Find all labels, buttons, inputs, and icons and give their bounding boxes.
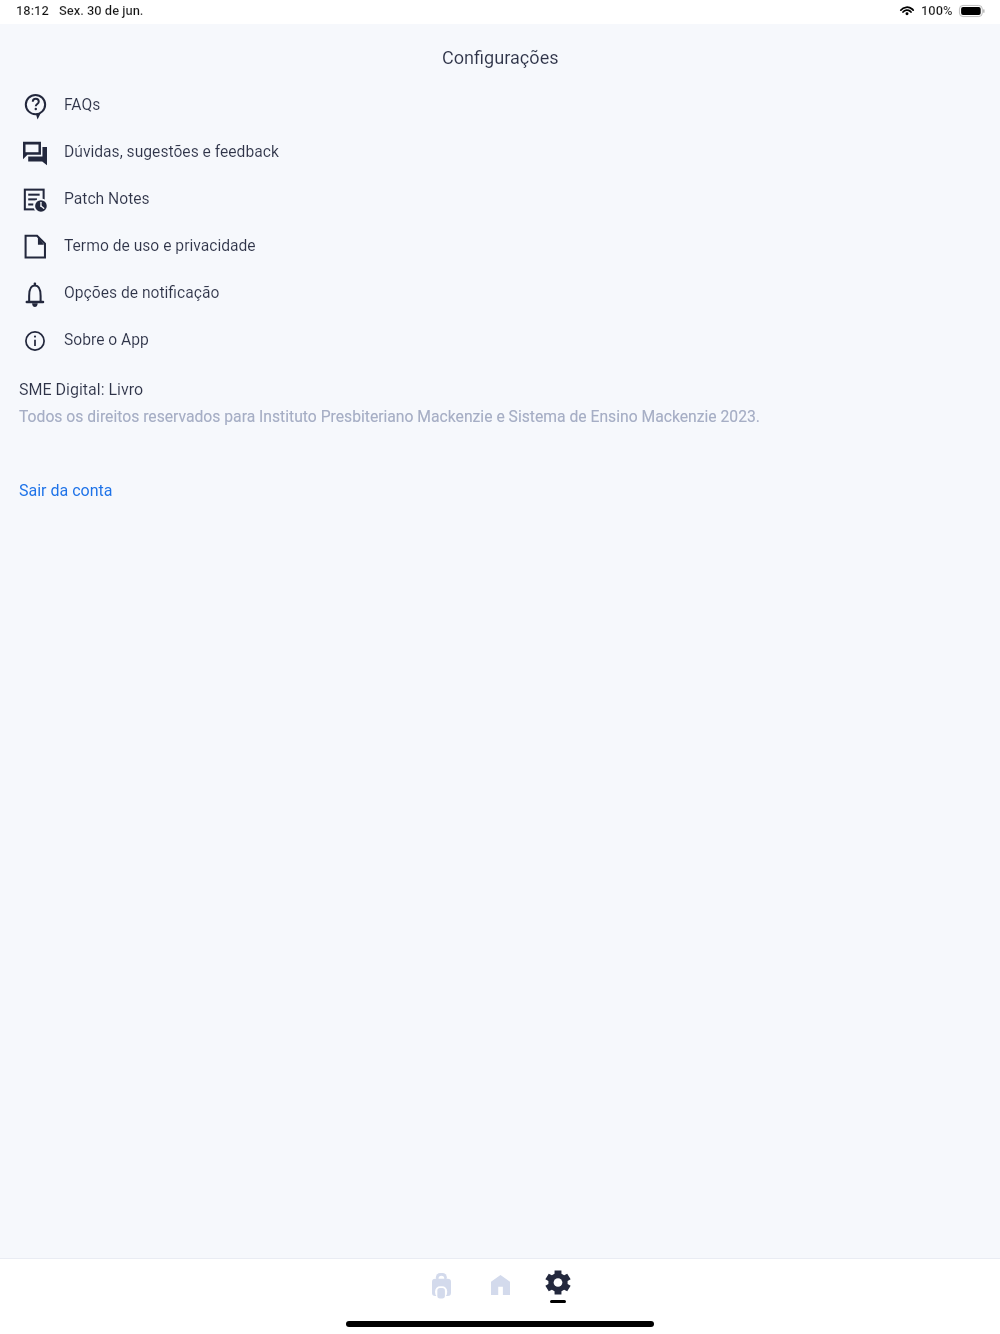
staticText: Configurações <box>442 47 559 68</box>
staticText: 100% <box>921 3 953 18</box>
staticText: SME Digital: Livro <box>19 380 144 399</box>
button[interactable]: Sobre o App <box>0 315 1000 362</box>
staticText: Sobre o App <box>64 330 149 348</box>
staticText: 18:12 <box>16 3 49 18</box>
button[interactable]: Início <box>472 1263 528 1309</box>
staticText: FAQs <box>64 95 101 113</box>
staticText: Dúvidas, sugestões e feedback <box>64 142 279 160</box>
button[interactable]: Configurações <box>530 1263 586 1309</box>
button[interactable]: Opções de notificação <box>0 268 1000 315</box>
button[interactable]: Patch Notes <box>0 174 1000 221</box>
staticText: Todos os direitos reservados para Instit… <box>19 407 760 425</box>
staticText: Termo de uso e privacidade <box>64 236 256 254</box>
button[interactable]: FAQs <box>0 80 1000 127</box>
staticText: Patch Notes <box>64 189 150 207</box>
button[interactable]: Termo de uso e privacidade <box>0 221 1000 268</box>
button[interactable]: Sair da conta <box>0 479 123 502</box>
button[interactable]: Mochila <box>413 1263 469 1309</box>
staticText: Sex. 30 de jun. <box>59 3 144 18</box>
staticText: Sair da conta <box>19 481 113 500</box>
button[interactable]: Dúvidas, sugestões e feedback <box>0 127 1000 174</box>
staticText: Opções de notificação <box>64 283 220 301</box>
